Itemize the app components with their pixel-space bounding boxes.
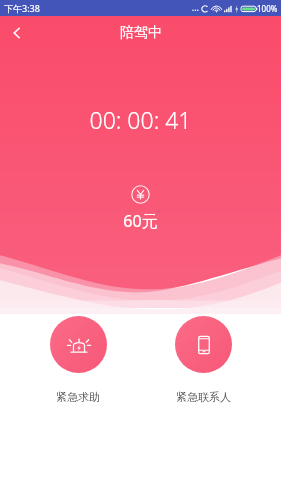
staticText: 下午3:38 xyxy=(4,2,40,14)
button[interactable]: Back xyxy=(0,16,34,50)
button[interactable]: 紧急求助 xyxy=(30,316,126,404)
staticText: 00: 00: 41 xyxy=(0,104,281,135)
button[interactable]: 紧急联系人 xyxy=(155,316,251,404)
staticText: 紧急求助 xyxy=(56,390,100,404)
other: 紧急联系人 xyxy=(192,333,216,357)
staticText: 100% xyxy=(257,3,278,14)
staticText: 陪驾中 xyxy=(120,24,162,42)
other: 紧急求助 xyxy=(67,333,91,357)
staticText: 60元 xyxy=(0,210,281,232)
staticText: 紧急联系人 xyxy=(176,390,231,404)
